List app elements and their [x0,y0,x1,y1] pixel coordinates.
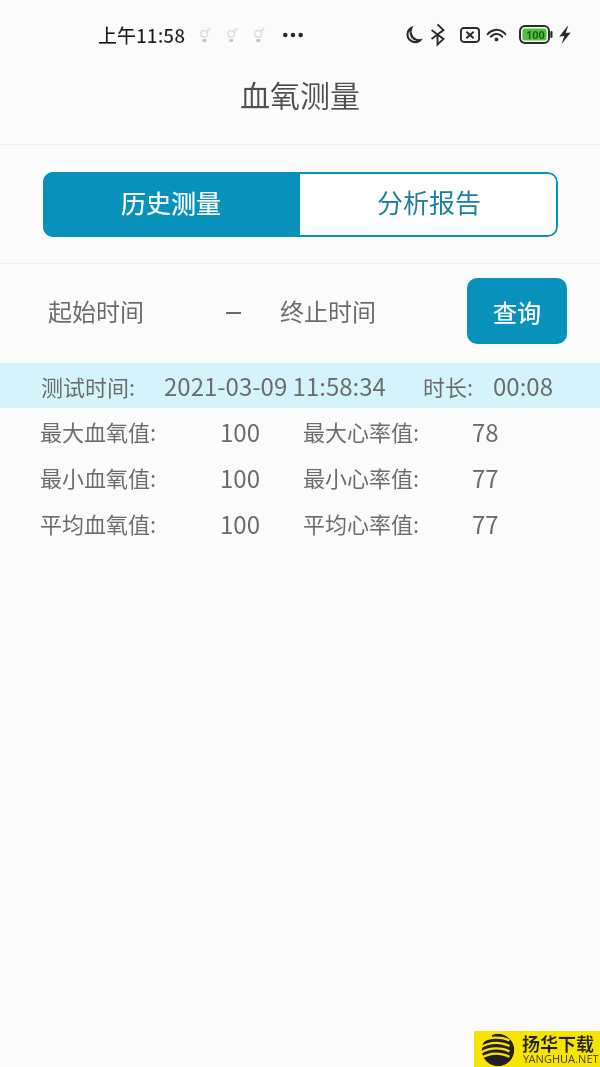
staticText: 100 [220,414,260,449]
staticText: YANGHUA.NET [523,1051,599,1066]
staticText: 平均心率值: [303,507,420,539]
staticText: 历史测量 [121,184,222,220]
staticText: 最小血氧值: [40,461,157,493]
button[interactable]: 终止时间 [280,279,376,341]
staticText: 时长: [423,370,474,402]
button[interactable]: 查询 [467,278,567,344]
staticText: 上午11:58 [98,21,185,49]
other: No SIM [460,27,480,43]
button[interactable]: 分析报告 [300,172,558,237]
staticText: 最大心率值: [303,415,420,447]
button[interactable]: 起始时间 [0,279,144,341]
staticText: 00:08 [493,368,553,403]
staticText: 78 [472,414,499,449]
staticText: 血氧测量 [240,72,360,115]
staticText: 分析报告 [377,183,482,221]
staticText: 测试时间: [41,370,136,402]
button[interactable]: 历史测量 [43,172,300,237]
staticText: 100 [526,27,545,42]
staticText: 77 [472,506,499,541]
staticText: 2021-03-09 11:58:34 [164,368,386,403]
staticText: 终止时间 [280,293,376,328]
staticText: 100 [220,460,260,495]
staticText: 最大血氧值: [40,415,157,447]
staticText: 平均血氧值: [40,507,157,539]
staticText: 查询 [493,294,541,329]
button[interactable]: 测试时间: [0,363,600,546]
staticText: 起始时间 [48,293,144,328]
staticText: 100 [220,506,260,541]
staticText: 扬华下载 [522,1031,594,1056]
staticText: 最小心率值: [303,461,420,493]
staticText: 77 [472,460,499,495]
